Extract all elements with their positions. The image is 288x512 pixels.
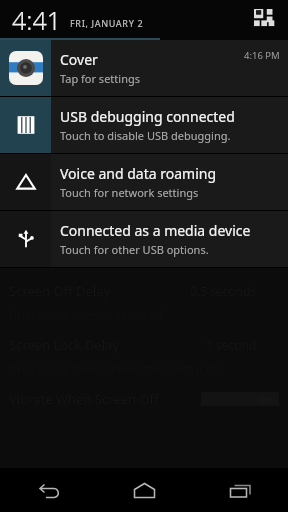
button[interactable]: Connected as a media device (0, 211, 288, 268)
staticText: Touch to disable USB debugging. (60, 128, 231, 143)
button[interactable]: USB debugging connected (0, 97, 288, 154)
button[interactable]: Quick settings (250, 5, 280, 35)
button[interactable]: Cover (0, 40, 288, 97)
staticText: Voice and data roaming (60, 164, 217, 183)
staticText: Touch for other USB options. (60, 242, 209, 257)
staticText: Tap for settings (60, 71, 140, 86)
staticText: 4:41 (12, 3, 61, 37)
button[interactable]: Home (96, 468, 192, 512)
staticText: FRI, JANUARY 2 (70, 17, 144, 29)
staticText: Connected as a media device (60, 221, 251, 240)
staticText: Cover (60, 50, 98, 69)
button[interactable]: Voice and data roaming (0, 154, 288, 211)
staticText: Touch for network settings (60, 185, 199, 200)
button[interactable]: ROAMING (0, 465, 288, 512)
button[interactable]: Back (0, 468, 96, 512)
staticText: 4:16 PM (244, 49, 280, 62)
staticText: USB debugging connected (60, 107, 235, 126)
button[interactable]: Recents (192, 468, 288, 512)
